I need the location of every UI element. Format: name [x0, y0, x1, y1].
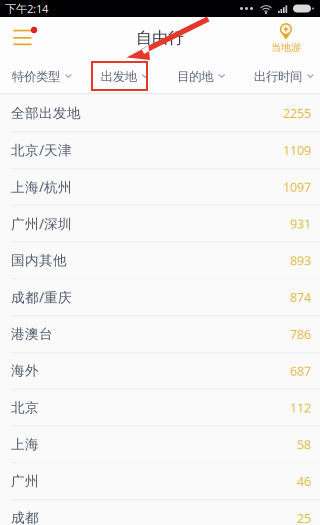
staticText: 46 — [297, 473, 311, 490]
button[interactable]: 广州 — [0, 463, 320, 500]
button[interactable]: 菜单 — [0, 17, 48, 59]
staticText: 北京/天津 — [11, 141, 72, 159]
staticText: 上海/杭州 — [11, 177, 72, 196]
staticText: 自由行 — [136, 28, 184, 48]
staticText: 出发地 — [101, 69, 137, 84]
staticText: 成都 — [11, 509, 39, 525]
button[interactable]: 成都 — [0, 500, 320, 525]
staticText: 58 — [297, 436, 311, 453]
staticText: 国内其他 — [11, 252, 67, 269]
staticText: 海外 — [11, 362, 39, 379]
staticText: 786 — [290, 325, 311, 343]
staticText: 1109 — [283, 141, 311, 159]
staticText: 893 — [290, 252, 311, 269]
button[interactable]: 出行时间 — [254, 59, 314, 94]
staticText: 25 — [297, 509, 311, 525]
staticText: 2255 — [283, 105, 311, 122]
button[interactable]: 广州/深圳 — [0, 206, 320, 242]
staticText: 特价类型 — [12, 69, 60, 84]
staticText: 出行时间 — [254, 69, 302, 84]
button[interactable]: 上海 — [0, 426, 320, 463]
staticText: 全部出发地 — [11, 105, 81, 122]
button[interactable]: 目的地 — [177, 59, 225, 94]
staticText: 687 — [290, 362, 311, 379]
button[interactable]: 上海/杭州 — [0, 169, 320, 206]
button[interactable]: 北京/天津 — [0, 132, 320, 169]
staticText: 广州/深圳 — [11, 214, 72, 233]
button[interactable]: 全部出发地 — [0, 95, 320, 132]
staticText: 1097 — [283, 178, 311, 195]
staticText: 当地游 — [271, 41, 301, 54]
staticText: 港澳台 — [11, 325, 53, 342]
button[interactable]: 出发地 — [101, 59, 149, 94]
staticText: 广州 — [11, 473, 39, 490]
button[interactable]: 港澳台 — [0, 316, 320, 353]
staticText: 874 — [290, 289, 311, 306]
staticText: 931 — [290, 215, 311, 232]
button[interactable]: 成都/重庆 — [0, 279, 320, 316]
staticText: 北京 — [11, 399, 39, 416]
button[interactable]: 国内其他 — [0, 242, 320, 279]
button[interactable]: 特价类型 — [12, 59, 72, 94]
staticText: 下午2:14 — [5, 1, 48, 16]
staticText: 成都/重庆 — [11, 288, 72, 306]
staticText: 上海 — [11, 436, 39, 453]
button[interactable]: 北京 — [0, 390, 320, 426]
staticText: 目的地 — [177, 69, 213, 84]
button[interactable]: 海外 — [0, 353, 320, 390]
button[interactable]: 当地游 — [259, 17, 320, 59]
staticText: 112 — [290, 399, 311, 416]
